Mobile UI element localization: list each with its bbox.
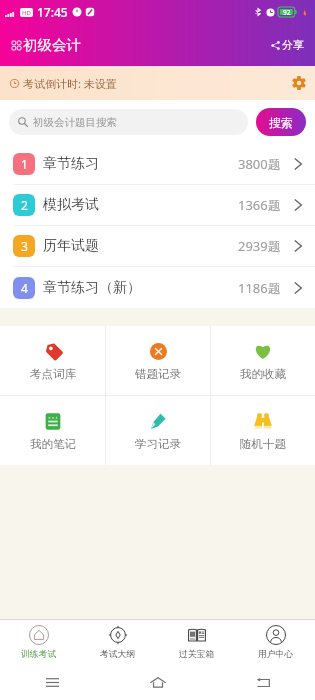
staticText: 搜索	[269, 115, 293, 130]
staticText: 1	[21, 156, 28, 172]
staticText: 我的笔记	[30, 437, 76, 451]
button[interactable]: 训练考试	[0, 620, 78, 665]
staticText: 章节练习（新）	[43, 279, 141, 297]
staticText: 分享	[282, 38, 304, 52]
staticText: 2939题	[238, 237, 281, 255]
button[interactable]: 用户中心	[236, 620, 315, 665]
staticText: 用户中心	[258, 649, 294, 660]
staticText: 随机十题	[240, 437, 286, 451]
button[interactable]: Home	[105, 665, 210, 700]
button[interactable]: 2	[0, 185, 315, 225]
staticText: 训练考试	[21, 649, 57, 660]
button[interactable]: 过关宝箱	[157, 620, 236, 665]
button[interactable]: Recents	[0, 665, 105, 700]
button[interactable]: 随机十题	[211, 396, 315, 465]
staticText: 17:45	[37, 4, 68, 20]
staticText: 2	[21, 197, 28, 213]
button[interactable]: 我的收藏	[211, 326, 315, 395]
staticText: 1366题	[238, 196, 281, 214]
staticText: 我的收藏	[240, 367, 286, 381]
staticText: 3800题	[238, 155, 281, 173]
staticText: 3	[21, 238, 28, 254]
button[interactable]: Back	[210, 665, 315, 700]
staticText: 考试大纲	[100, 649, 136, 660]
button[interactable]: 1	[0, 144, 315, 184]
staticText: 章节练习	[43, 155, 99, 173]
button[interactable]: Countdown settings	[292, 76, 306, 90]
staticText: 92	[283, 8, 291, 17]
staticText: 考点词库	[30, 367, 76, 381]
staticText: 1186题	[238, 279, 281, 297]
button[interactable]: 错题记录	[106, 326, 210, 395]
button[interactable]: 考试大纲	[78, 620, 157, 665]
staticText: HD	[22, 9, 31, 17]
button[interactable]: 初级会计题目搜索	[9, 109, 248, 135]
button[interactable]: 学习记录	[106, 396, 210, 465]
button[interactable]: 3	[0, 226, 315, 266]
button[interactable]: 我的笔记	[0, 396, 105, 465]
staticText: 错题记录	[135, 367, 181, 381]
staticText: 考试倒计时: 未设置	[23, 76, 117, 91]
staticText: 4	[21, 280, 28, 296]
button[interactable]: 考点词库	[0, 326, 105, 395]
staticText: 过关宝箱	[179, 649, 215, 660]
button[interactable]: 搜索	[256, 108, 306, 136]
staticText: 学习记录	[135, 437, 181, 451]
button[interactable]: 4	[0, 267, 315, 308]
staticText: 历年试题	[43, 237, 99, 255]
staticText: 初级会计题目搜索	[33, 116, 117, 129]
staticText: 模拟考试	[43, 196, 99, 214]
button[interactable]: 分享	[269, 34, 306, 56]
staticText: 初级会计	[23, 36, 81, 54]
